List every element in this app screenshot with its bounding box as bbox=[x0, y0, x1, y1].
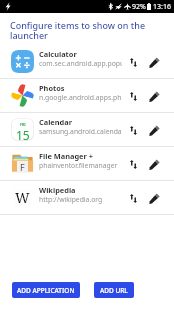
staticText: File Manager + bbox=[39, 151, 93, 161]
staticText: Calendar bbox=[39, 117, 72, 127]
staticText: com.sec.android.app.popupcalculator bbox=[39, 59, 122, 68]
button[interactable]: Reorder bbox=[124, 49, 142, 75]
staticText: Configure items to show on the launcher bbox=[10, 19, 168, 41]
staticText: 92% bbox=[132, 2, 146, 12]
button[interactable]: Edit bbox=[142, 83, 165, 109]
button[interactable]: FRI bbox=[0, 113, 174, 147]
staticText: Calculator bbox=[39, 49, 77, 59]
button[interactable]: Reorder bbox=[124, 117, 142, 143]
staticText: http://wikipedia.org bbox=[39, 195, 103, 204]
button[interactable]: F bbox=[0, 147, 174, 181]
staticText: Wikipedia bbox=[39, 185, 76, 195]
staticText: 15 bbox=[16, 127, 30, 141]
staticText: F bbox=[20, 161, 25, 173]
staticText: phainventor.filemanager bbox=[39, 161, 118, 170]
staticText: FRI bbox=[20, 122, 26, 127]
button[interactable]: Reorder bbox=[124, 185, 142, 211]
button[interactable]: Edit bbox=[142, 117, 165, 143]
button[interactable]: Edit bbox=[142, 151, 165, 177]
staticText: samsung.android.calendar bbox=[39, 127, 122, 136]
button[interactable]: Reorder bbox=[124, 83, 142, 109]
staticText: Photos bbox=[39, 83, 65, 93]
button[interactable]: Reorder bbox=[124, 151, 142, 177]
button[interactable]: Calculator bbox=[0, 45, 174, 79]
staticText: W bbox=[15, 188, 30, 207]
button[interactable]: ADD URL bbox=[94, 282, 134, 298]
staticText: 13:16 bbox=[153, 2, 171, 12]
button[interactable]: Edit bbox=[142, 49, 165, 75]
staticText: n.google.android.apps.photos bbox=[39, 93, 122, 102]
button[interactable]: Photos bbox=[0, 79, 174, 113]
button[interactable]: ADD APPLICATION bbox=[12, 282, 80, 298]
button[interactable]: W bbox=[0, 181, 174, 215]
staticText: ADD URL bbox=[100, 286, 128, 295]
staticText: ADD APPLICATION bbox=[17, 286, 75, 295]
button[interactable]: Edit bbox=[142, 185, 165, 211]
